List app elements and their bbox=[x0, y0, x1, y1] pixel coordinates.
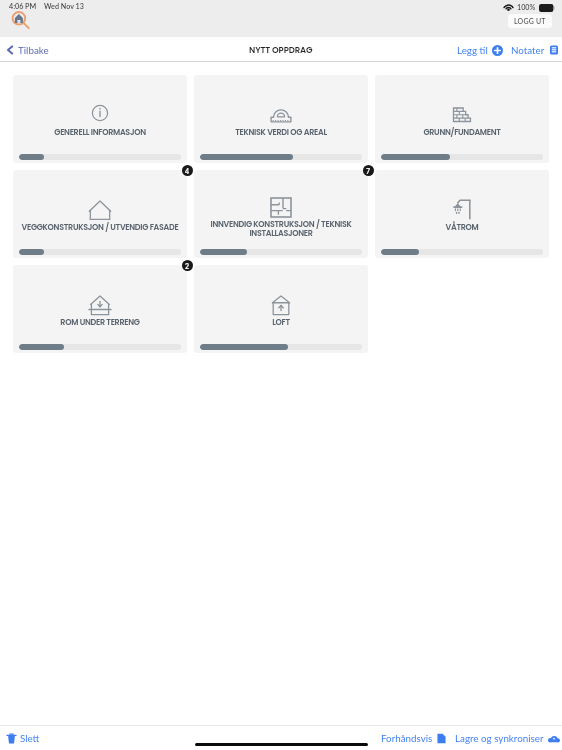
button[interactable]: GENERELL INFORMASJON bbox=[13, 75, 187, 163]
staticText: 2 bbox=[185, 262, 190, 270]
staticText: GENERELL INFORMASJON bbox=[16, 127, 184, 138]
button[interactable]: Legg til bbox=[457, 44, 503, 56]
button[interactable]: LOFT bbox=[194, 265, 368, 353]
button[interactable]: Slett bbox=[7, 732, 40, 744]
staticText: 4:06 PM bbox=[9, 2, 37, 11]
staticText: Wed Nov 13 bbox=[44, 2, 84, 11]
button[interactable]: Notater bbox=[511, 44, 558, 56]
button[interactable]: VEGGKONSTRUKSJON / UTVENDIG FASADE bbox=[13, 170, 187, 258]
button[interactable]: Tilbake bbox=[4, 44, 49, 56]
staticText: ROM UNDER TERRENG bbox=[16, 317, 184, 328]
staticText: Legg til bbox=[457, 44, 488, 56]
staticText: VEGGKONSTRUKSJON / UTVENDIG FASADE bbox=[16, 222, 184, 233]
staticText: LOGG UT bbox=[514, 17, 546, 25]
button[interactable]: VÅTROM bbox=[375, 170, 549, 258]
staticText: INNVENDIG KONSTRUKSJON / TEKNISK INSTALL… bbox=[197, 219, 365, 239]
button[interactable]: 4 notes bbox=[182, 165, 193, 176]
staticText: 100% bbox=[517, 3, 536, 12]
staticText: GRUNN/FUNDAMENT bbox=[378, 127, 546, 138]
button[interactable]: ROM UNDER TERRENG bbox=[13, 265, 187, 353]
staticText: VÅTROM bbox=[378, 222, 546, 233]
button[interactable]: TEKNISK VERDI OG AREAL bbox=[194, 75, 368, 163]
button[interactable]: 2 notes bbox=[182, 260, 193, 271]
button[interactable]: App home bbox=[5, 8, 29, 32]
button[interactable]: LOGG UT bbox=[508, 14, 552, 28]
staticText: Forhåndsvis bbox=[381, 732, 433, 744]
staticText: Slett bbox=[20, 732, 40, 744]
button[interactable]: GRUNN/FUNDAMENT bbox=[375, 75, 549, 163]
button[interactable]: Forhåndsvis bbox=[381, 732, 446, 744]
staticText: Lagre og synkroniser bbox=[455, 732, 544, 744]
button[interactable]: Lagre og synkroniser bbox=[455, 732, 560, 744]
staticText: Tilbake bbox=[18, 44, 49, 56]
staticText: 4 bbox=[185, 167, 190, 175]
staticText: Notater bbox=[511, 44, 545, 56]
staticText: LOFT bbox=[197, 317, 365, 328]
button[interactable]: 7 notes bbox=[363, 165, 374, 176]
staticText: NYTT OPPDRAG bbox=[249, 44, 313, 56]
staticText: 7 bbox=[366, 167, 371, 175]
button[interactable]: INNVENDIG KONSTRUKSJON / TEKNISK INSTALL… bbox=[194, 170, 368, 258]
staticText: TEKNISK VERDI OG AREAL bbox=[197, 127, 365, 138]
